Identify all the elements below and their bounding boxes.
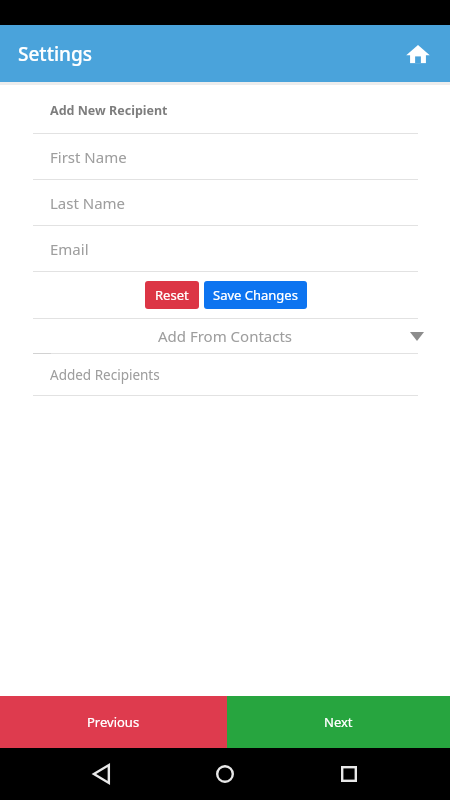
staticText: Settings — [18, 41, 92, 67]
staticText: Added Recipients — [50, 366, 160, 384]
button[interactable]: First Name — [33, 133, 418, 179]
button[interactable]: Back — [80, 752, 124, 796]
staticText: Save Changes — [213, 286, 298, 304]
button[interactable]: Home — [400, 36, 436, 72]
button[interactable]: Add From Contacts — [0, 319, 450, 353]
button[interactable]: Home — [203, 752, 247, 796]
staticText: Email — [50, 239, 89, 259]
staticText: Last Name — [50, 193, 126, 213]
staticText: Previous — [87, 713, 140, 731]
button[interactable]: Email — [33, 225, 418, 271]
button[interactable]: Save Changes — [204, 281, 307, 309]
staticText: First Name — [50, 147, 127, 167]
button[interactable]: Previous — [0, 696, 227, 748]
button[interactable]: Last Name — [33, 179, 418, 225]
staticText: Add New Recipient — [50, 102, 168, 119]
staticText: Next — [324, 713, 353, 731]
button[interactable]: Reset — [145, 281, 199, 309]
staticText: Add From Contacts — [0, 326, 450, 346]
button[interactable]: Next — [227, 696, 450, 748]
staticText: Reset — [155, 286, 189, 304]
button[interactable]: Recent apps — [327, 752, 371, 796]
button[interactable]: Added Recipients — [33, 354, 418, 395]
